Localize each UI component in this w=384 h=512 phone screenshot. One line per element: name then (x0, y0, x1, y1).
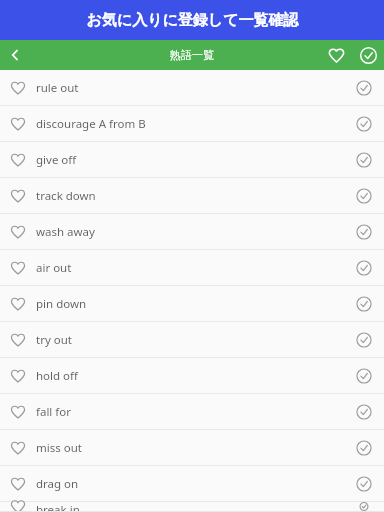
button[interactable]: Mark hold off as learned (344, 358, 384, 393)
button[interactable]: Add wash away to favourites (0, 214, 384, 250)
button[interactable]: Mark fall for as learned (344, 394, 384, 429)
button[interactable]: Add give off to favourites (0, 142, 36, 177)
button[interactable]: Mark give off as learned (344, 142, 384, 177)
button[interactable]: Add track down to favourites (0, 178, 36, 213)
button[interactable]: Add discourage A from B to favourites (0, 106, 384, 142)
staticText: 熟語一覧 (170, 48, 214, 62)
button[interactable]: Mark rule out as learned (344, 70, 384, 105)
button[interactable]: Mark air out as learned (344, 250, 384, 285)
button[interactable]: Mark discourage A from B as learned (344, 106, 384, 141)
button[interactable]: Favourites (320, 40, 352, 70)
staticText: wash away (36, 224, 344, 240)
button[interactable]: Add fall for to favourites (0, 394, 36, 429)
button[interactable]: Add air out to favourites (0, 250, 36, 285)
button[interactable]: Add pin down to favourites (0, 286, 36, 321)
button[interactable]: Add air out to favourites (0, 250, 384, 286)
button[interactable]: Add hold off to favourites (0, 358, 384, 394)
button[interactable]: Mark wash away as learned (344, 214, 384, 249)
staticText: drag on (36, 476, 344, 492)
button[interactable]: Add fall for to favourites (0, 394, 384, 430)
button[interactable]: Mark try out as learned (344, 322, 384, 357)
button[interactable]: Add drag on to favourites (0, 466, 36, 501)
button[interactable]: Add break in to favourites (0, 502, 384, 512)
button[interactable]: Back (0, 40, 30, 70)
button[interactable]: Mark break in as learned (344, 502, 384, 511)
button[interactable]: Add miss out to favourites (0, 430, 36, 465)
button[interactable]: Add rule out to favourites (0, 70, 384, 106)
button[interactable]: Mark miss out as learned (344, 430, 384, 465)
staticText: give off (36, 152, 344, 168)
button[interactable]: Add miss out to favourites (0, 430, 384, 466)
staticText: miss out (36, 440, 344, 456)
button[interactable]: Add give off to favourites (0, 142, 384, 178)
button[interactable]: Add discourage A from B to favourites (0, 106, 36, 141)
button[interactable]: お気に入りに登録して一覧確認 (0, 0, 384, 40)
button[interactable]: Add pin down to favourites (0, 286, 384, 322)
button[interactable]: Mark drag on as learned (344, 466, 384, 501)
staticText: break in (36, 502, 344, 511)
button[interactable]: Mark pin down as learned (344, 286, 384, 321)
staticText: pin down (36, 296, 344, 312)
button[interactable]: Add wash away to favourites (0, 214, 36, 249)
staticText: fall for (36, 404, 344, 420)
staticText: air out (36, 260, 344, 276)
button[interactable]: Add track down to favourites (0, 178, 384, 214)
staticText: お気に入りに登録して一覧確認 (86, 11, 299, 30)
button[interactable]: Add drag on to favourites (0, 466, 384, 502)
staticText: hold off (36, 368, 344, 384)
staticText: track down (36, 188, 344, 204)
staticText: rule out (36, 80, 344, 96)
button[interactable]: Add try out to favourites (0, 322, 36, 357)
button[interactable]: Add break in to favourites (0, 502, 36, 511)
button[interactable]: Add hold off to favourites (0, 358, 36, 393)
button[interactable]: Add try out to favourites (0, 322, 384, 358)
staticText: discourage A from B (36, 116, 344, 132)
button[interactable]: Add rule out to favourites (0, 70, 36, 105)
button[interactable]: Learned items (352, 40, 384, 70)
staticText: try out (36, 332, 344, 348)
button[interactable]: Mark track down as learned (344, 178, 384, 213)
